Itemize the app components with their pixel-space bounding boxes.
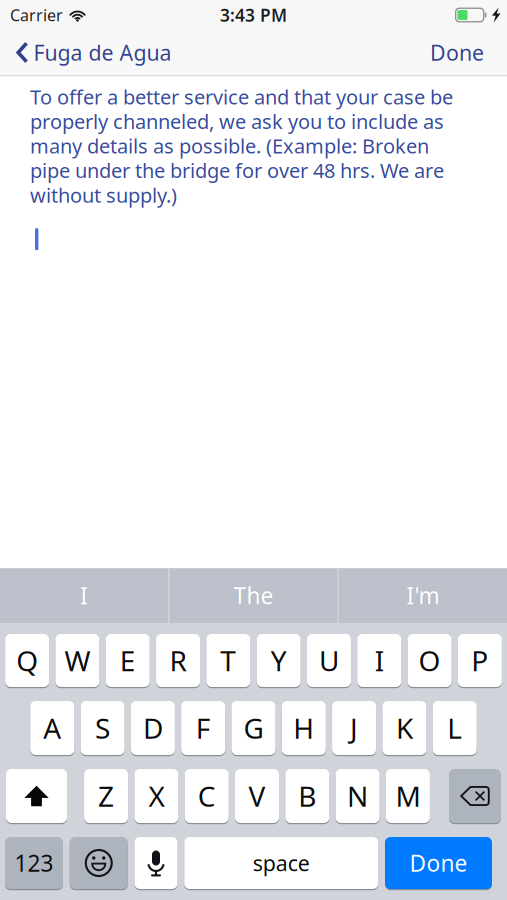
- button[interactable]: I'm: [339, 568, 507, 623]
- button[interactable]: Q: [5, 633, 49, 688]
- staticText: G: [243, 709, 263, 747]
- button[interactable]: Z: [84, 768, 128, 824]
- staticText: D: [143, 709, 163, 747]
- staticText: properly channeled, we ask you to includ…: [30, 108, 444, 135]
- staticText: To offer a better service and that your …: [30, 83, 453, 110]
- staticText: A: [43, 709, 61, 747]
- button[interactable]: L: [433, 700, 477, 756]
- staticText: The: [233, 580, 273, 610]
- staticText: X: [148, 777, 164, 815]
- button[interactable]: T: [206, 633, 250, 688]
- button[interactable]: V: [235, 768, 279, 824]
- staticText: F: [196, 709, 211, 747]
- button[interactable]: The: [169, 568, 337, 623]
- button[interactable]: R: [156, 633, 200, 688]
- staticText: S: [95, 709, 110, 747]
- button[interactable]: K: [382, 700, 426, 756]
- staticText: Carrier: [10, 4, 63, 26]
- button[interactable]: P: [458, 633, 502, 688]
- button[interactable]: I: [0, 568, 168, 623]
- button[interactable]: O: [408, 633, 452, 688]
- staticText: without supply.): [30, 182, 177, 208]
- staticText: N: [347, 777, 368, 815]
- button[interactable]: M: [386, 768, 430, 824]
- staticText: Done: [430, 38, 484, 67]
- staticText: Q: [16, 642, 38, 679]
- button[interactable]: S: [81, 700, 125, 756]
- button[interactable]: Shift: [6, 768, 67, 824]
- staticText: B: [298, 777, 316, 815]
- staticText: Done: [409, 848, 467, 878]
- button[interactable]: W: [55, 633, 99, 688]
- button[interactable]: Dictate: [134, 836, 177, 890]
- staticText: W: [64, 642, 90, 679]
- button[interactable]: Emoji: [70, 836, 128, 890]
- staticText: P: [471, 642, 488, 679]
- staticText: O: [419, 642, 441, 679]
- button[interactable]: I: [357, 633, 401, 688]
- staticText: I: [80, 580, 88, 610]
- staticText: Fuga de Agua: [33, 38, 171, 67]
- staticText: 3:43 PM: [220, 3, 287, 26]
- staticText: many details as possible. (Example: Brok…: [30, 132, 429, 159]
- staticText: T: [220, 642, 236, 679]
- button[interactable]: G: [231, 700, 275, 756]
- button[interactable]: N: [336, 768, 380, 824]
- staticText: H: [293, 709, 314, 747]
- staticText: K: [396, 709, 413, 747]
- button[interactable]: Fuga de Agua: [0, 30, 181, 75]
- button[interactable]: X: [134, 768, 178, 824]
- button[interactable]: A: [30, 700, 74, 756]
- button[interactable]: U: [307, 633, 351, 688]
- button[interactable]: E: [106, 633, 150, 688]
- button[interactable]: 123: [5, 836, 63, 890]
- staticText: U: [319, 642, 339, 679]
- button[interactable]: D: [131, 700, 175, 756]
- button[interactable]: Y: [257, 633, 301, 688]
- staticText: space: [253, 849, 310, 877]
- button[interactable]: Done: [385, 836, 492, 890]
- staticText: L: [447, 709, 462, 747]
- button[interactable]: F: [181, 700, 225, 756]
- button[interactable]: J: [332, 700, 376, 756]
- button[interactable]: H: [282, 700, 326, 756]
- button[interactable]: Delete: [449, 768, 501, 824]
- staticText: V: [248, 777, 265, 815]
- staticText: I'm: [406, 580, 439, 610]
- button[interactable]: space: [184, 836, 378, 890]
- staticText: E: [120, 642, 136, 679]
- staticText: Z: [98, 777, 114, 815]
- staticText: J: [350, 709, 358, 747]
- staticText: pipe under the bridge for over 48 hrs. W…: [30, 157, 444, 184]
- staticText: 123: [14, 848, 53, 878]
- staticText: I: [375, 642, 384, 679]
- staticText: R: [169, 642, 186, 679]
- staticText: Y: [271, 642, 287, 679]
- button[interactable]: B: [285, 768, 329, 824]
- staticText: M: [395, 777, 420, 815]
- staticText: C: [198, 777, 216, 815]
- button[interactable]: C: [185, 768, 229, 824]
- button[interactable]: Done: [415, 30, 507, 75]
